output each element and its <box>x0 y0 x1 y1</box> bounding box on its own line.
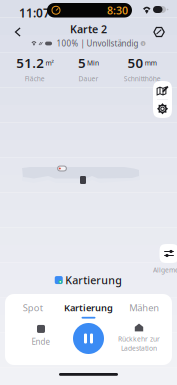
button[interactable]: Edit map <box>153 81 172 99</box>
staticText: Karte 2 <box>70 22 107 36</box>
staticText: Dauer <box>78 74 98 83</box>
staticText: 8:30 <box>107 3 128 17</box>
staticText: Kartierung <box>64 301 113 314</box>
button[interactable]: Back <box>7 21 29 43</box>
button[interactable]: Ende <box>15 324 67 348</box>
staticText: Mähen <box>129 301 159 314</box>
staticText: Min <box>87 58 99 67</box>
staticText: Schnitthöhe <box>124 74 161 83</box>
staticText: Ladestation <box>121 344 157 353</box>
button[interactable]: Kartierung <box>61 302 116 318</box>
staticText: Spot <box>23 301 43 314</box>
button[interactable]: Map options <box>153 100 172 118</box>
staticText: 11:07 <box>19 5 50 21</box>
staticText: 50 <box>128 54 144 72</box>
staticText: Ende <box>31 336 50 347</box>
staticText: mm <box>145 58 157 67</box>
staticText: 100% | Unvollständig <box>57 38 139 49</box>
button[interactable]: Rückkehr zur <box>113 324 165 352</box>
staticText: 51.2 <box>16 54 44 72</box>
button[interactable]: Mähen <box>116 302 172 318</box>
button[interactable]: Spot <box>5 302 61 318</box>
staticText: Allgemein <box>153 265 177 274</box>
staticText: 5 <box>78 54 86 72</box>
button[interactable]: Pause <box>73 323 104 354</box>
staticText: m² <box>45 58 53 67</box>
button[interactable]: Map settings <box>148 21 170 43</box>
staticText: Kartierung <box>65 273 122 287</box>
staticText: Fläche <box>25 74 45 83</box>
staticText: i <box>143 41 144 46</box>
staticText: Rückkehr zur <box>118 334 160 343</box>
button[interactable]: Allgemein <box>153 244 177 274</box>
